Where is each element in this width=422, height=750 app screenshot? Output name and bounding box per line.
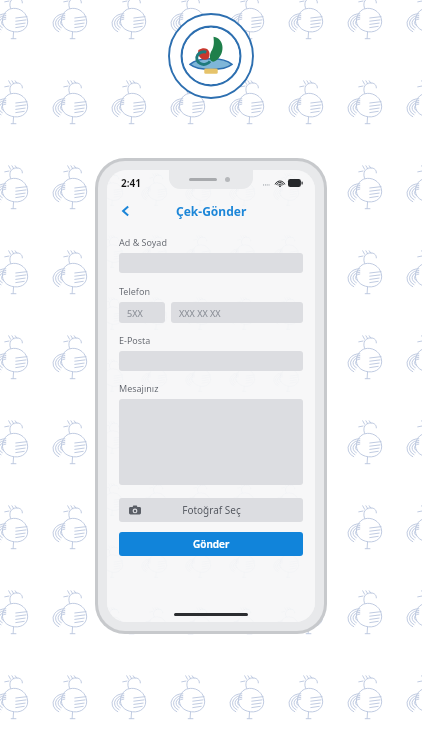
staticText: Mesajınız [119, 382, 159, 394]
staticText: Gönder [193, 537, 230, 551]
staticText: XXX XX XX [179, 307, 221, 319]
button[interactable]: Back [113, 198, 139, 224]
button[interactable]: Fotoğraf Seç [119, 498, 303, 522]
button[interactable]: XXX XX XX [171, 302, 303, 323]
staticText: Fotoğraf Seç [182, 503, 241, 517]
staticText: Ad & Soyad [119, 236, 167, 248]
staticText: Telefon [119, 285, 150, 297]
staticText: 2:41 [121, 176, 141, 190]
staticText: 5XX [127, 307, 143, 319]
staticText: E-Posta [119, 334, 151, 346]
button[interactable]: 5XX [119, 302, 165, 323]
staticText: Çek-Gönder [176, 203, 247, 219]
button[interactable]: Gönder [119, 532, 303, 556]
